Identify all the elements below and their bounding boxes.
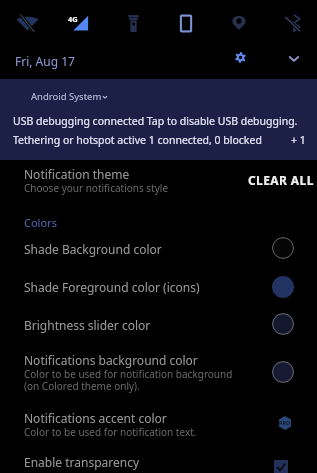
staticText: + 1 xyxy=(291,133,306,147)
button[interactable]: Brightness slider color xyxy=(0,313,317,350)
button[interactable]: CLEAR ALL xyxy=(241,168,307,190)
staticText: Brightness slider color xyxy=(24,317,151,333)
button[interactable]: Wi-Fi off xyxy=(16,14,39,32)
button[interactable]: Bluetooth off xyxy=(285,14,301,32)
button[interactable]: Notifications background color xyxy=(0,348,317,396)
button[interactable]: Location xyxy=(232,15,246,30)
button[interactable]: Flashlight xyxy=(127,14,140,32)
staticText: Shade Foreground color (icons) xyxy=(24,279,200,295)
button[interactable]: Shade Foreground color (icons) xyxy=(0,275,317,312)
button[interactable]: Mobile signal 4G xyxy=(67,14,89,31)
staticText: Fri, Aug 17 xyxy=(15,53,75,69)
staticText: Android System xyxy=(31,90,102,103)
staticText: Shade Background color xyxy=(24,241,162,257)
staticText: Choose your notifications style xyxy=(24,181,169,195)
staticText: CLEAR ALL xyxy=(248,172,314,188)
staticText: Enable transparency xyxy=(24,454,140,470)
staticText: Colors xyxy=(24,215,57,230)
staticText: Notification theme xyxy=(24,166,130,182)
staticText: Notifications accent color xyxy=(24,410,167,426)
button[interactable]: Shade Background color xyxy=(0,237,317,274)
staticText: USB debugging connected Tap to disable U… xyxy=(13,114,298,128)
staticText: Notifications background color xyxy=(24,352,198,368)
button[interactable]: Enable transparency xyxy=(0,450,317,473)
button[interactable]: Settings xyxy=(235,52,246,63)
button[interactable]: Android System xyxy=(0,79,317,160)
staticText: 4G xyxy=(68,14,78,24)
staticText: Color to be used for notification backgr… xyxy=(24,367,233,393)
staticText: Color to be used for notification text. xyxy=(24,425,197,439)
button[interactable]: Notification theme xyxy=(0,162,317,202)
button[interactable]: Notifications accent color xyxy=(0,406,317,454)
button[interactable]: Screen xyxy=(179,14,193,33)
staticText: Tethering or hotspot active 1 connected,… xyxy=(13,133,262,147)
staticText: PRO xyxy=(279,419,291,426)
button[interactable]: Expand quick settings xyxy=(289,53,299,64)
